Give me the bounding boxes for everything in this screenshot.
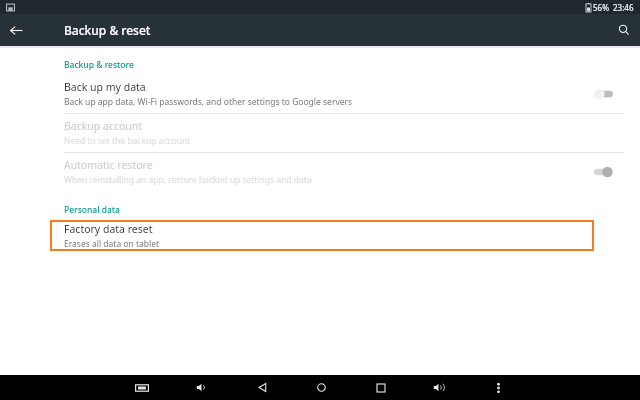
staticText: Erases all data on tablet bbox=[64, 238, 160, 250]
staticText: 23:46 bbox=[613, 2, 634, 13]
button[interactable]: Recents bbox=[351, 375, 410, 400]
staticText: Personal data bbox=[64, 204, 120, 216]
button[interactable]: Navigate up bbox=[0, 14, 32, 46]
staticText: Back up my data bbox=[64, 80, 146, 94]
staticText: Backup account bbox=[64, 119, 143, 133]
button[interactable]: Search bbox=[608, 14, 640, 46]
button[interactable]: Volume up bbox=[410, 375, 469, 400]
button[interactable]: Back bbox=[232, 375, 292, 400]
button[interactable]: Backup account bbox=[0, 114, 640, 152]
button[interactable]: Screenshot bbox=[112, 375, 172, 400]
staticText: When reinstalling an app, restore backed… bbox=[64, 174, 312, 186]
staticText: Backup & reset bbox=[64, 22, 151, 38]
staticText: Backup & restore bbox=[64, 59, 134, 71]
button[interactable]: More options bbox=[469, 375, 528, 400]
button[interactable]: Factory data reset bbox=[50, 220, 594, 251]
staticText: Automatic restore bbox=[64, 158, 153, 172]
button[interactable]: Volume down bbox=[172, 375, 232, 400]
staticText: Factory data reset bbox=[64, 222, 153, 236]
button[interactable]: Home bbox=[292, 375, 351, 400]
staticText: Back up app data, Wi-Fi passwords, and o… bbox=[64, 96, 353, 108]
button[interactable]: Automatic restore bbox=[0, 153, 640, 191]
button[interactable]: Back up my data bbox=[0, 75, 640, 113]
staticText: 56% bbox=[593, 2, 609, 13]
staticText: Need to set the backup account bbox=[64, 135, 191, 147]
